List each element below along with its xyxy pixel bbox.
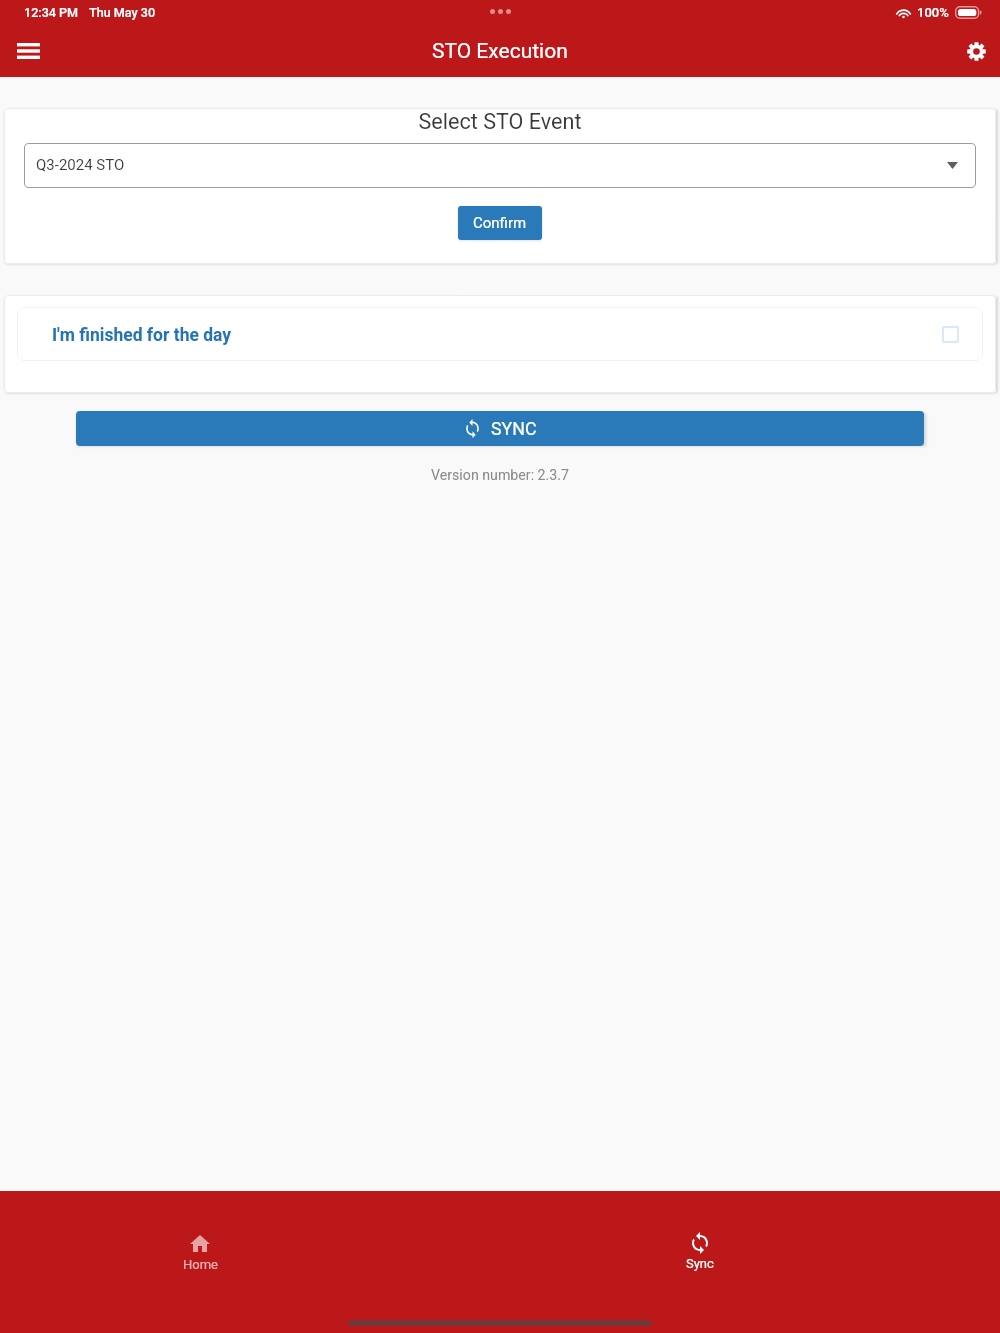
staticText: Home	[183, 1257, 218, 1272]
staticText: Version number: 2.3.7	[0, 467, 1000, 484]
staticText: I'm finished for the day	[52, 325, 232, 346]
button[interactable]: Q3-2024 STO	[24, 143, 976, 188]
button[interactable]: Sync	[660, 1231, 740, 1271]
staticText: 12:34 PM	[24, 5, 79, 20]
staticText: Thu May 30	[89, 5, 156, 20]
button[interactable]: Confirm	[458, 206, 542, 240]
staticText: Sync	[686, 1256, 714, 1271]
staticText: STO Execution	[432, 39, 568, 64]
button[interactable]: Settings	[954, 29, 998, 73]
button[interactable]: Menu	[6, 29, 50, 73]
staticText: 100%	[917, 5, 949, 20]
staticText: Q3-2024 STO	[36, 156, 125, 174]
button[interactable]: Finished for the day checkbox	[942, 326, 959, 343]
staticText: Confirm	[473, 214, 527, 232]
staticText: Select STO Event	[4, 109, 996, 134]
staticText: SYNC	[491, 418, 537, 439]
button[interactable]: Home	[160, 1232, 240, 1272]
button[interactable]: SYNC	[76, 411, 924, 446]
button[interactable]: I'm finished for the day	[17, 307, 983, 361]
